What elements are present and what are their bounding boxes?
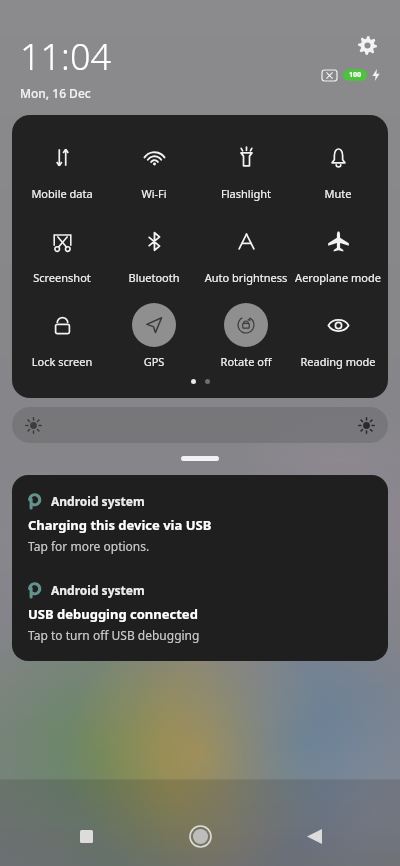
staticText: Charging this device via USB <box>28 516 212 534</box>
staticText: Aeroplane mode <box>292 270 384 285</box>
staticText: Auto brightness <box>200 270 292 285</box>
other: Android system <box>28 583 42 597</box>
staticText: 11:04 <box>20 32 112 81</box>
staticText: Tap to turn off USB debugging <box>28 627 200 643</box>
button[interactable]: Mobile data <box>16 129 108 201</box>
staticText: 100 <box>349 70 362 80</box>
button[interactable]: GPS <box>108 297 200 369</box>
other: Android system <box>28 494 42 508</box>
staticText: Mon, 16 Dec <box>20 85 91 101</box>
button[interactable]: Android system <box>12 572 388 653</box>
staticText: Mute <box>292 186 384 201</box>
button[interactable]: Reading mode <box>292 297 384 369</box>
button[interactable]: Home <box>178 814 222 858</box>
staticText: Screenshot <box>16 270 108 285</box>
staticText: Mobile data <box>16 186 108 201</box>
staticText: Android system <box>51 582 145 598</box>
button[interactable]: Recent apps <box>64 814 108 858</box>
staticText: Lock screen <box>16 354 108 369</box>
button[interactable]: Brightness <box>12 407 388 443</box>
button[interactable]: Settings <box>354 32 380 58</box>
staticText: GPS <box>108 354 200 369</box>
button[interactable]: Android system <box>12 483 388 564</box>
staticText: Android system <box>51 493 145 509</box>
button[interactable]: Lock screen <box>16 297 108 369</box>
button[interactable]: Rotate off <box>200 297 292 369</box>
button[interactable]: Back <box>292 814 336 858</box>
staticText: USB debugging connected <box>28 605 198 623</box>
button[interactable]: Screenshot <box>16 213 108 285</box>
staticText: Rotate off <box>200 354 292 369</box>
button[interactable]: Flashlight <box>200 129 292 201</box>
button[interactable]: Bluetooth <box>108 213 200 285</box>
button[interactable]: Wi-Fi <box>108 129 200 201</box>
staticText: Flashlight <box>200 186 292 201</box>
staticText: Wi-Fi <box>108 186 200 201</box>
staticText: Reading mode <box>292 354 384 369</box>
staticText: Bluetooth <box>108 270 200 285</box>
button[interactable]: Mute <box>292 129 384 201</box>
button[interactable]: Aeroplane mode <box>292 213 384 285</box>
button[interactable]: Auto brightness <box>200 213 292 285</box>
staticText: Tap for more options. <box>28 538 150 554</box>
